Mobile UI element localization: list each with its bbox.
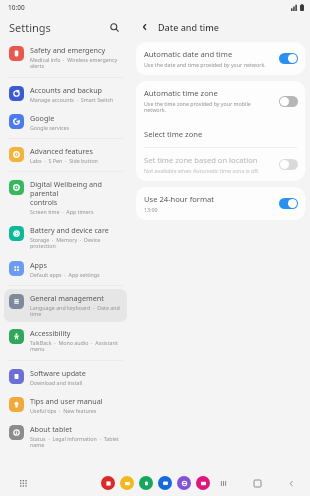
button[interactable]: cam bbox=[196, 476, 210, 490]
button[interactable]: Software update bbox=[4, 364, 127, 390]
staticText: Language and keyboard · Date and time bbox=[30, 304, 120, 318]
button[interactable]: Automatic date and time bbox=[136, 42, 305, 75]
button[interactable]: All apps bbox=[16, 476, 30, 490]
button[interactable]: flip bbox=[101, 476, 115, 490]
staticText: Safety and emergency bbox=[30, 45, 106, 55]
staticText: Apps bbox=[30, 260, 47, 270]
button[interactable]: Recents bbox=[216, 476, 230, 490]
staticText: Tips and user manual bbox=[30, 396, 103, 406]
button[interactable]: Toggle on bbox=[279, 53, 298, 64]
button[interactable]: Safety and emergency bbox=[4, 41, 127, 74]
button[interactable]: Back bbox=[137, 19, 153, 35]
staticText: Download and install bbox=[30, 379, 83, 386]
staticText: Set time zone based on location bbox=[144, 155, 258, 165]
staticText: Not available when Automatic time zone i… bbox=[144, 167, 260, 174]
staticText: Settings bbox=[9, 20, 51, 35]
staticText: Automatic date and time bbox=[144, 49, 233, 59]
button[interactable]: Battery and device care bbox=[4, 221, 127, 254]
staticText: Storage · Memory · Device protection bbox=[30, 236, 122, 250]
staticText: Battery and device care bbox=[30, 225, 109, 235]
staticText: 13:00 bbox=[144, 206, 158, 213]
button[interactable]: Use 24-hour format bbox=[136, 187, 305, 220]
button[interactable]: Toggle off bbox=[279, 96, 298, 107]
staticText: Manage accounts · Smart Switch bbox=[30, 96, 114, 103]
staticText: TalkBack · Mono audio · Assistant menu bbox=[30, 339, 118, 353]
button[interactable]: Accounts and backup bbox=[4, 81, 127, 107]
staticText: General management bbox=[30, 293, 104, 303]
button[interactable]: Toggle on bbox=[279, 198, 298, 209]
staticText: About tablet bbox=[30, 424, 72, 434]
staticText: Status · Legal information · Tablet name bbox=[30, 435, 119, 449]
button[interactable]: Automatic time zone bbox=[136, 81, 305, 121]
staticText: Google services bbox=[30, 124, 70, 131]
staticText: Google bbox=[30, 113, 55, 123]
button[interactable]: folder bbox=[120, 476, 134, 490]
staticText: Accessibility bbox=[30, 328, 71, 338]
staticText: Default apps · App settings bbox=[30, 271, 100, 278]
button[interactable]: Advanced features bbox=[4, 142, 127, 168]
staticText: Use the date and time provided by your n… bbox=[144, 61, 266, 68]
button[interactable]: phone bbox=[139, 476, 153, 490]
button[interactable]: Digital Wellbeing and parental controls bbox=[4, 175, 127, 219]
button[interactable]: msg bbox=[158, 476, 172, 490]
staticText: Screen time · App timers bbox=[30, 208, 94, 215]
button[interactable]: Toggle off bbox=[279, 159, 298, 170]
button[interactable]: Back bbox=[284, 476, 298, 490]
button[interactable]: General management bbox=[4, 289, 127, 322]
button[interactable]: Tips and user manual bbox=[4, 392, 127, 418]
button[interactable]: Select time zone bbox=[136, 121, 305, 147]
staticText: Use 24-hour format bbox=[144, 194, 215, 204]
button[interactable]: Set time zone based on location bbox=[136, 148, 305, 181]
staticText: Date and time bbox=[158, 21, 219, 33]
button[interactable]: Google bbox=[4, 109, 127, 135]
staticText: Use the time zone provided by your mobil… bbox=[144, 100, 273, 114]
staticText: Accounts and backup bbox=[30, 85, 102, 95]
staticText: Labs · S Pen · Side button bbox=[30, 157, 98, 164]
staticText: Automatic time zone bbox=[144, 88, 218, 98]
button[interactable]: Search bbox=[105, 18, 123, 36]
staticText: Select time zone bbox=[144, 129, 203, 139]
button[interactable]: net bbox=[177, 476, 191, 490]
button[interactable]: Apps bbox=[4, 256, 127, 282]
button[interactable]: Accessibility bbox=[4, 324, 127, 357]
staticText: Digital Wellbeing and parental controls bbox=[30, 179, 122, 207]
staticText: Advanced features bbox=[30, 146, 93, 156]
button[interactable]: About tablet bbox=[4, 420, 127, 453]
button[interactable]: Home bbox=[250, 476, 264, 490]
staticText: Useful tips · New features bbox=[30, 407, 97, 414]
staticText: Medical info · Wireless emergency alerts bbox=[30, 56, 118, 70]
staticText: Software update bbox=[30, 368, 86, 378]
staticText: 10:00 bbox=[8, 3, 25, 12]
